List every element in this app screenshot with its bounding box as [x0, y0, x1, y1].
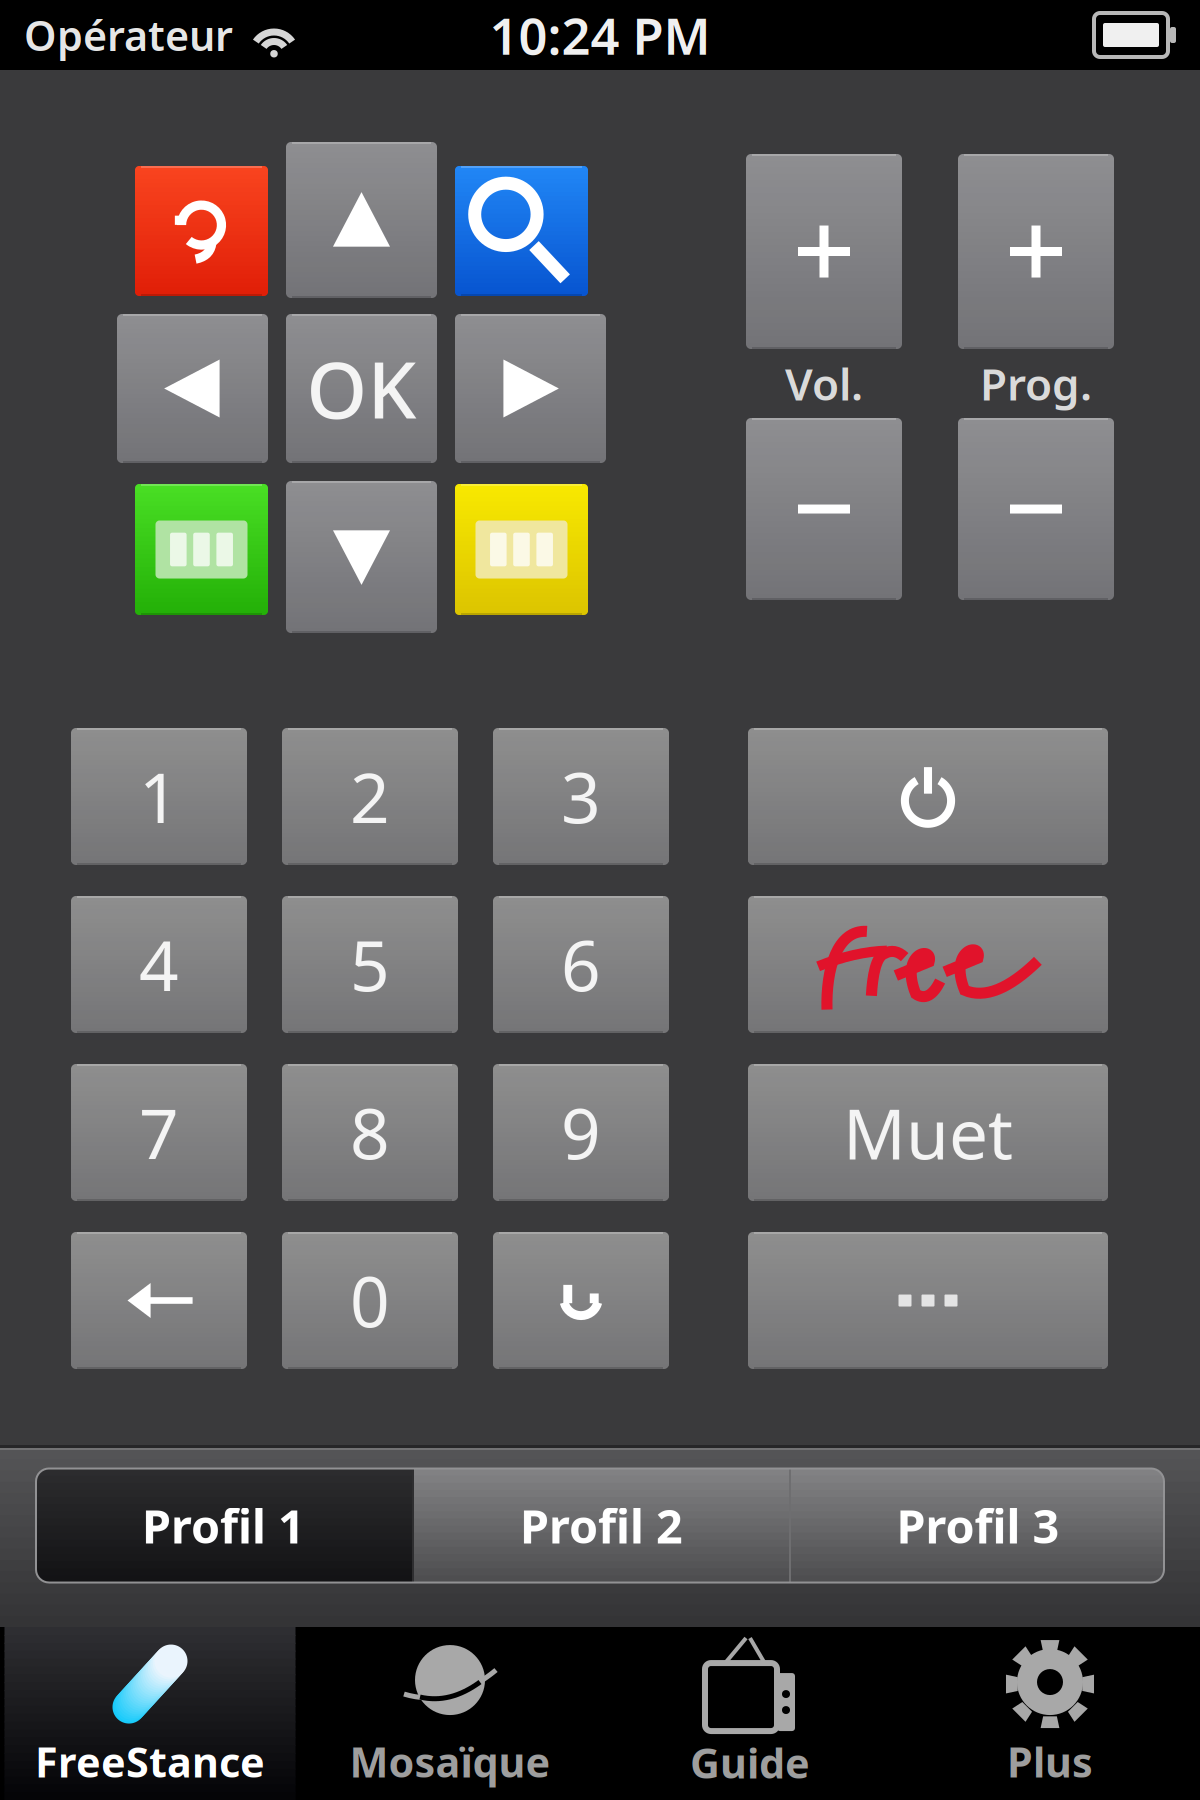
button[interactable]: Touche jaune — [455, 484, 588, 615]
button[interactable]: Mosaïque — [300, 1627, 600, 1800]
button[interactable]: Profil 3 — [791, 1468, 1165, 1582]
staticText: 2 — [350, 750, 390, 843]
button[interactable]: 3 — [493, 728, 669, 865]
staticText: 1 — [139, 750, 179, 843]
staticText: 8 — [350, 1086, 390, 1179]
button[interactable]: Profil 1 — [35, 1468, 412, 1582]
staticText: Guide — [690, 1735, 810, 1790]
staticText: Profil 1 — [142, 1494, 305, 1556]
button[interactable]: 0 — [282, 1232, 458, 1369]
staticText: Prog. — [980, 354, 1092, 413]
button[interactable]: Retour — [135, 166, 268, 296]
button[interactable]: 4 — [71, 896, 247, 1033]
staticText: FreeStance — [35, 1734, 265, 1789]
staticText: Vol. — [785, 354, 863, 413]
button[interactable]: Free — [748, 896, 1108, 1033]
button[interactable]: Retour arrière — [71, 1232, 247, 1369]
button[interactable]: Recherche — [455, 166, 588, 296]
button[interactable]: Bas — [286, 481, 437, 633]
button[interactable]: Vol. plus — [746, 154, 902, 349]
staticText: 0 — [350, 1254, 390, 1347]
button[interactable]: Guide — [600, 1627, 900, 1800]
button[interactable]: 9 — [493, 1064, 669, 1201]
button[interactable]: Plus — [900, 1627, 1200, 1800]
button[interactable]: Prog. moins — [958, 418, 1114, 600]
button[interactable]: Profil 2 — [414, 1468, 789, 1582]
button[interactable]: Vol. moins — [746, 418, 902, 600]
button[interactable]: Marche arrêt — [748, 728, 1108, 865]
button[interactable]: Plus d'options — [748, 1232, 1108, 1369]
staticText: 9 — [561, 1086, 601, 1179]
button[interactable]: 2 — [282, 728, 458, 865]
staticText: Muet — [843, 1086, 1013, 1179]
staticText: Plus — [1007, 1734, 1093, 1789]
button[interactable]: 5 — [282, 896, 458, 1033]
button[interactable]: Muet — [748, 1064, 1108, 1201]
button[interactable]: 6 — [493, 896, 669, 1033]
button[interactable]: Droite — [455, 314, 606, 463]
staticText: Opérateur — [24, 8, 233, 62]
button[interactable]: Rejouer — [493, 1232, 669, 1369]
staticText: 4 — [139, 918, 179, 1011]
button[interactable]: Touche verte — [135, 484, 268, 615]
staticText: 5 — [350, 918, 390, 1011]
staticText: 3 — [561, 750, 601, 843]
button[interactable]: Prog. plus — [958, 154, 1114, 349]
button[interactable]: Haut — [286, 142, 437, 298]
button[interactable]: 7 — [71, 1064, 247, 1201]
staticText: OK — [306, 337, 416, 440]
button[interactable]: 1 — [71, 728, 247, 865]
button[interactable]: 8 — [282, 1064, 458, 1201]
staticText: Profil 3 — [896, 1494, 1059, 1556]
staticText: 7 — [139, 1086, 179, 1179]
button[interactable]: OK — [286, 314, 437, 463]
button[interactable]: Gauche — [117, 314, 268, 463]
staticText: 6 — [561, 918, 601, 1011]
staticText: Profil 2 — [520, 1494, 683, 1556]
staticText: Mosaïque — [349, 1734, 550, 1789]
button[interactable]: FreeStance — [0, 1627, 300, 1800]
staticText: 10:24 PM — [489, 1, 710, 69]
